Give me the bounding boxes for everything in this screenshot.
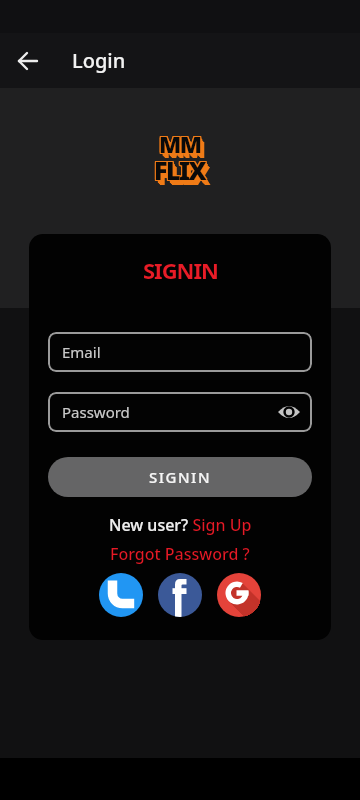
button[interactable]: New user? Sign Up — [109, 514, 252, 536]
staticText: Password — [62, 402, 130, 422]
staticText: FLIX — [156, 156, 208, 190]
staticText: Login — [72, 47, 126, 74]
staticText: SIGNIN — [149, 467, 212, 487]
staticText: MM — [158, 127, 200, 158]
button[interactable] — [158, 573, 202, 617]
staticText: FLIX — [154, 153, 206, 187]
staticText: Forgot Password ? — [110, 543, 250, 565]
button[interactable] — [18, 52, 38, 70]
staticText: FLIX — [155, 154, 207, 188]
button[interactable]: Email — [48, 332, 312, 372]
staticText: FLIX — [154, 152, 206, 186]
staticText: New user? Sign Up — [109, 514, 252, 536]
staticText: MM — [160, 129, 202, 160]
staticText: MM — [161, 130, 203, 161]
staticText: MM — [159, 128, 201, 159]
staticText: MM — [161, 131, 203, 162]
button[interactable] — [99, 573, 143, 617]
staticText: FLIX — [154, 153, 206, 187]
staticText: MM — [160, 127, 202, 158]
staticText: FLIX — [153, 153, 205, 187]
staticText: FLIX — [155, 152, 207, 186]
staticText: FLIX — [153, 154, 205, 188]
staticText: MM — [159, 129, 201, 160]
staticText: MM — [159, 127, 201, 158]
staticText: MM — [162, 132, 204, 163]
button[interactable]: Forgot Password ? — [110, 543, 250, 565]
staticText: FLIX — [154, 154, 206, 188]
staticText: MM — [160, 128, 202, 159]
staticText: Email — [62, 342, 101, 362]
staticText: FLIX — [158, 158, 210, 192]
button[interactable] — [217, 573, 261, 617]
button[interactable]: SIGNIN — [48, 457, 312, 497]
staticText: MM — [158, 129, 200, 160]
staticText: FLIX — [155, 154, 207, 188]
staticText: MM — [159, 128, 201, 159]
staticText: FLIX — [153, 152, 205, 186]
staticText: FLIX — [155, 153, 207, 187]
staticText: MM — [160, 129, 202, 160]
staticText: MM — [163, 133, 205, 164]
staticText: FLIX — [157, 157, 209, 191]
staticText: SIGNIN — [143, 255, 218, 285]
button[interactable]: Password — [48, 392, 312, 432]
staticText: FLIX — [156, 155, 208, 189]
staticText: MM — [158, 128, 200, 159]
